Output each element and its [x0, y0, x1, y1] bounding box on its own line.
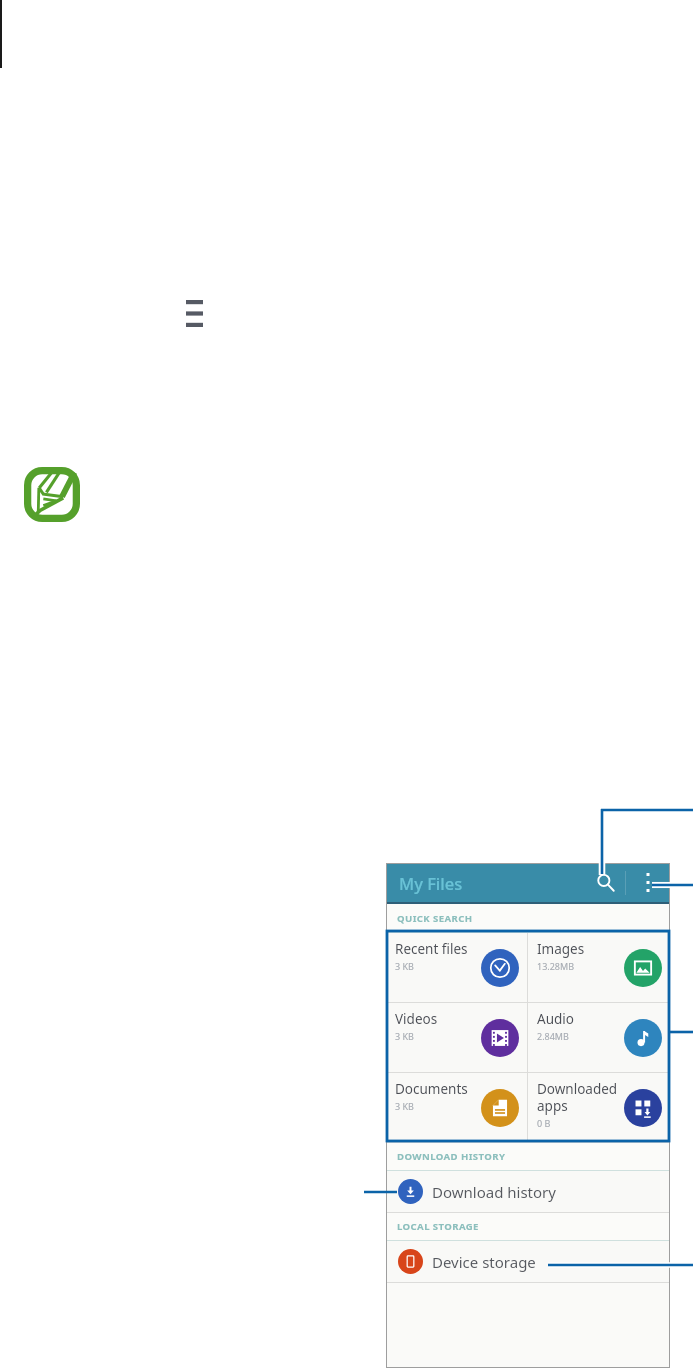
- staticText: DOWNLOAD HISTORY: [397, 1150, 506, 1163]
- staticText: 3 KB: [395, 960, 414, 972]
- button[interactable]: Images: [528, 933, 670, 1002]
- staticText: 3 KB: [395, 1030, 414, 1042]
- staticText: QUICK SEARCH: [397, 912, 473, 925]
- staticText: Documents: [395, 1080, 468, 1098]
- staticText: Images: [537, 940, 585, 958]
- button[interactable]: Audio: [528, 1003, 670, 1072]
- staticText: Downloaded apps: [537, 1080, 632, 1115]
- staticText: Device storage: [432, 1252, 536, 1272]
- staticText: My Files: [399, 872, 463, 894]
- button[interactable]: Device storage: [386, 1241, 670, 1282]
- staticText: 3 KB: [395, 1100, 414, 1112]
- button[interactable]: Downloaded apps: [528, 1073, 670, 1142]
- button[interactable]: Recent files: [386, 933, 527, 1002]
- staticText: Videos: [395, 1010, 438, 1028]
- staticText: Recent files: [395, 940, 468, 958]
- button[interactable]: More options: [626, 863, 670, 902]
- staticText: 2.84MB: [537, 1030, 569, 1042]
- button[interactable]: Documents: [386, 1073, 527, 1142]
- button[interactable]: Search: [587, 863, 625, 902]
- button[interactable]: Videos: [386, 1003, 527, 1072]
- staticText: Download history: [432, 1182, 556, 1202]
- staticText: 13.28MB: [537, 960, 575, 972]
- button[interactable]: Download history: [386, 1171, 670, 1212]
- staticText: Audio: [537, 1010, 574, 1028]
- staticText: LOCAL STORAGE: [397, 1220, 479, 1233]
- staticText: 0 B: [537, 1117, 551, 1129]
